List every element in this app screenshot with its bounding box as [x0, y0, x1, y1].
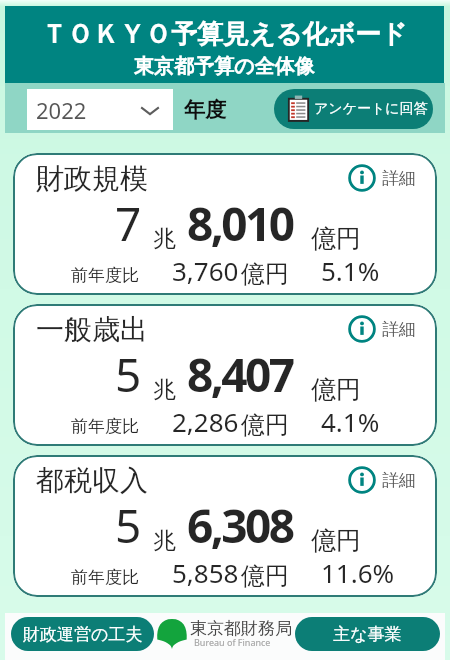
staticText: Bureau of Finance	[194, 636, 271, 648]
staticText: 6,308	[187, 494, 293, 557]
staticText: 兆	[153, 224, 176, 253]
staticText: 億円	[311, 374, 361, 405]
staticText: 億円	[241, 259, 289, 289]
staticText: 2,286	[172, 404, 239, 439]
staticText: 前年度比	[71, 416, 139, 437]
staticText: 億円	[311, 223, 361, 254]
staticText: アンケートに回答	[314, 100, 428, 118]
staticText: 8,407	[187, 343, 293, 406]
staticText: 5	[115, 343, 142, 406]
button[interactable]: 財政規模	[13, 153, 437, 295]
staticText: 都税収入	[36, 463, 148, 498]
button[interactable]: 財政運営の工夫	[11, 617, 154, 651]
staticText: 主な事業	[333, 624, 402, 645]
staticText: ＴＯＫＹＯ予算見える化ボード	[41, 18, 408, 51]
staticText: 東京都予算の全体像	[134, 54, 315, 79]
button[interactable]: 主な事業	[295, 617, 440, 651]
staticText: 前年度比	[71, 265, 139, 286]
staticText: 億円	[311, 525, 361, 556]
staticText: 詳細	[382, 470, 416, 491]
staticText: 詳細	[382, 319, 416, 340]
staticText: 財政規模	[36, 161, 148, 196]
button[interactable]: 2022	[27, 89, 173, 130]
staticText: 8,010	[187, 192, 293, 255]
button[interactable]: 詳細	[347, 314, 417, 344]
staticText: 兆	[153, 526, 176, 555]
staticText: 7	[115, 192, 142, 255]
staticText: 5.1%	[321, 253, 380, 288]
staticText: 億円	[241, 410, 289, 440]
staticText: 兆	[153, 375, 176, 404]
staticText: 5	[115, 494, 142, 557]
staticText: 年度	[184, 97, 226, 123]
staticText: 4.1%	[321, 404, 380, 439]
staticText: 2022	[36, 95, 87, 125]
button[interactable]: 詳細	[347, 465, 417, 495]
staticText: 東京都財務局	[190, 618, 292, 639]
staticText: 前年度比	[71, 567, 139, 588]
staticText: 一般歳出	[36, 312, 148, 347]
button[interactable]: 一般歳出	[13, 304, 437, 446]
staticText: 詳細	[382, 168, 416, 189]
button[interactable]: 都税収入	[13, 455, 437, 597]
button[interactable]: アンケートに回答	[274, 89, 433, 129]
staticText: 11.6%	[321, 555, 395, 590]
other: Tokyo Bureau of Finance logo	[157, 619, 187, 649]
button[interactable]: 詳細	[347, 163, 417, 193]
staticText: 財政運営の工夫	[23, 624, 143, 645]
staticText: 億円	[241, 561, 289, 591]
staticText: 5,858	[172, 555, 239, 590]
staticText: 3,760	[172, 253, 239, 288]
